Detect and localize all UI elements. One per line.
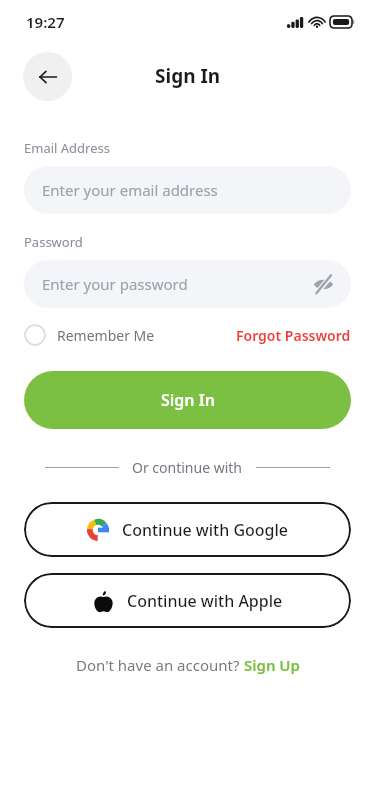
button[interactable]: Sign Up <box>244 655 300 675</box>
button[interactable]: Remember Me <box>24 324 155 346</box>
staticText: Email Address <box>24 139 110 157</box>
staticText: Sign In <box>161 389 215 411</box>
staticText: Or continue with <box>132 458 243 477</box>
button[interactable]: Back <box>23 52 72 101</box>
button[interactable]: Continue with Google <box>24 502 351 557</box>
staticText: Password <box>24 233 83 251</box>
staticText: Forgot Password <box>236 326 351 345</box>
button[interactable]: Forgot Password <box>236 326 351 345</box>
staticText: Continue with Apple <box>127 590 283 612</box>
staticText: Sign In <box>155 63 221 89</box>
button[interactable]: Toggle password visibility <box>309 270 337 298</box>
staticText: Don't have an account? <box>76 655 244 675</box>
button[interactable]: Enter your password <box>24 260 351 308</box>
staticText: Remember Me <box>57 326 155 345</box>
staticText: Continue with Google <box>122 519 288 541</box>
staticText: Sign Up <box>244 655 300 675</box>
staticText: 19:27 <box>26 12 65 32</box>
staticText: Enter your password <box>42 274 188 294</box>
staticText: Enter your email address <box>42 180 218 200</box>
button[interactable]: Enter your email address <box>24 166 351 214</box>
button[interactable]: Sign In <box>24 371 351 429</box>
button[interactable]: Continue with Apple <box>24 573 351 628</box>
